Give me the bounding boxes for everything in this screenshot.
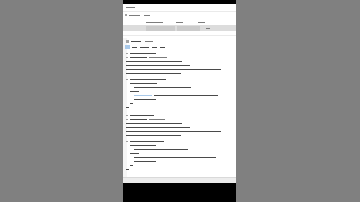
button[interactable] <box>123 25 236 31</box>
button[interactable] <box>123 38 236 44</box>
button[interactable] <box>123 12 236 18</box>
button[interactable] <box>123 4 236 11</box>
